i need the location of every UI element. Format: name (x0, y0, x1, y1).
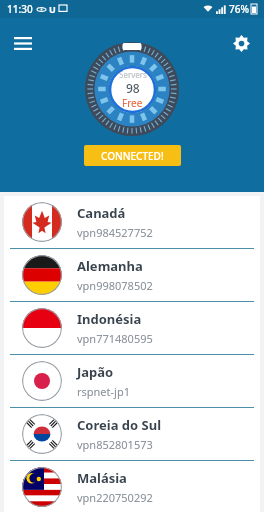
staticText: vpn984527752 (77, 225, 153, 240)
staticText: Servers (119, 69, 147, 80)
button[interactable]: Canadá (4, 196, 260, 248)
staticText: vpn852801573 (77, 437, 153, 452)
staticText: 11:30 (7, 2, 33, 16)
staticText: Alemanha (77, 257, 143, 275)
staticText: Free (122, 96, 143, 110)
staticText: U (49, 3, 56, 15)
button[interactable]: Malásia (4, 461, 260, 512)
staticText: Japão (77, 363, 114, 381)
staticText: Malásia (77, 469, 127, 487)
button[interactable]: Indonésia (4, 302, 260, 354)
staticText: Indonésia (77, 310, 142, 328)
staticText: vpn220750292 (77, 490, 153, 505)
staticText: CONNECTED! (101, 149, 164, 163)
staticText: 98 (126, 80, 140, 96)
staticText: Canadá (77, 204, 126, 222)
staticText: vpn998078502 (77, 278, 153, 293)
staticText: vpn771480595 (77, 331, 153, 346)
button[interactable]: Alemanha (4, 249, 260, 301)
staticText: Coreia do Sul (77, 416, 162, 434)
staticText: 76% (229, 2, 249, 16)
button[interactable]: CONNECTED! (84, 145, 181, 166)
button[interactable]: Japão (4, 355, 260, 407)
button[interactable]: Menu (8, 28, 38, 58)
staticText: rspnet-jp1 (77, 384, 130, 399)
button[interactable]: Coreia do Sul (4, 408, 260, 460)
button[interactable]: Settings (226, 28, 256, 58)
